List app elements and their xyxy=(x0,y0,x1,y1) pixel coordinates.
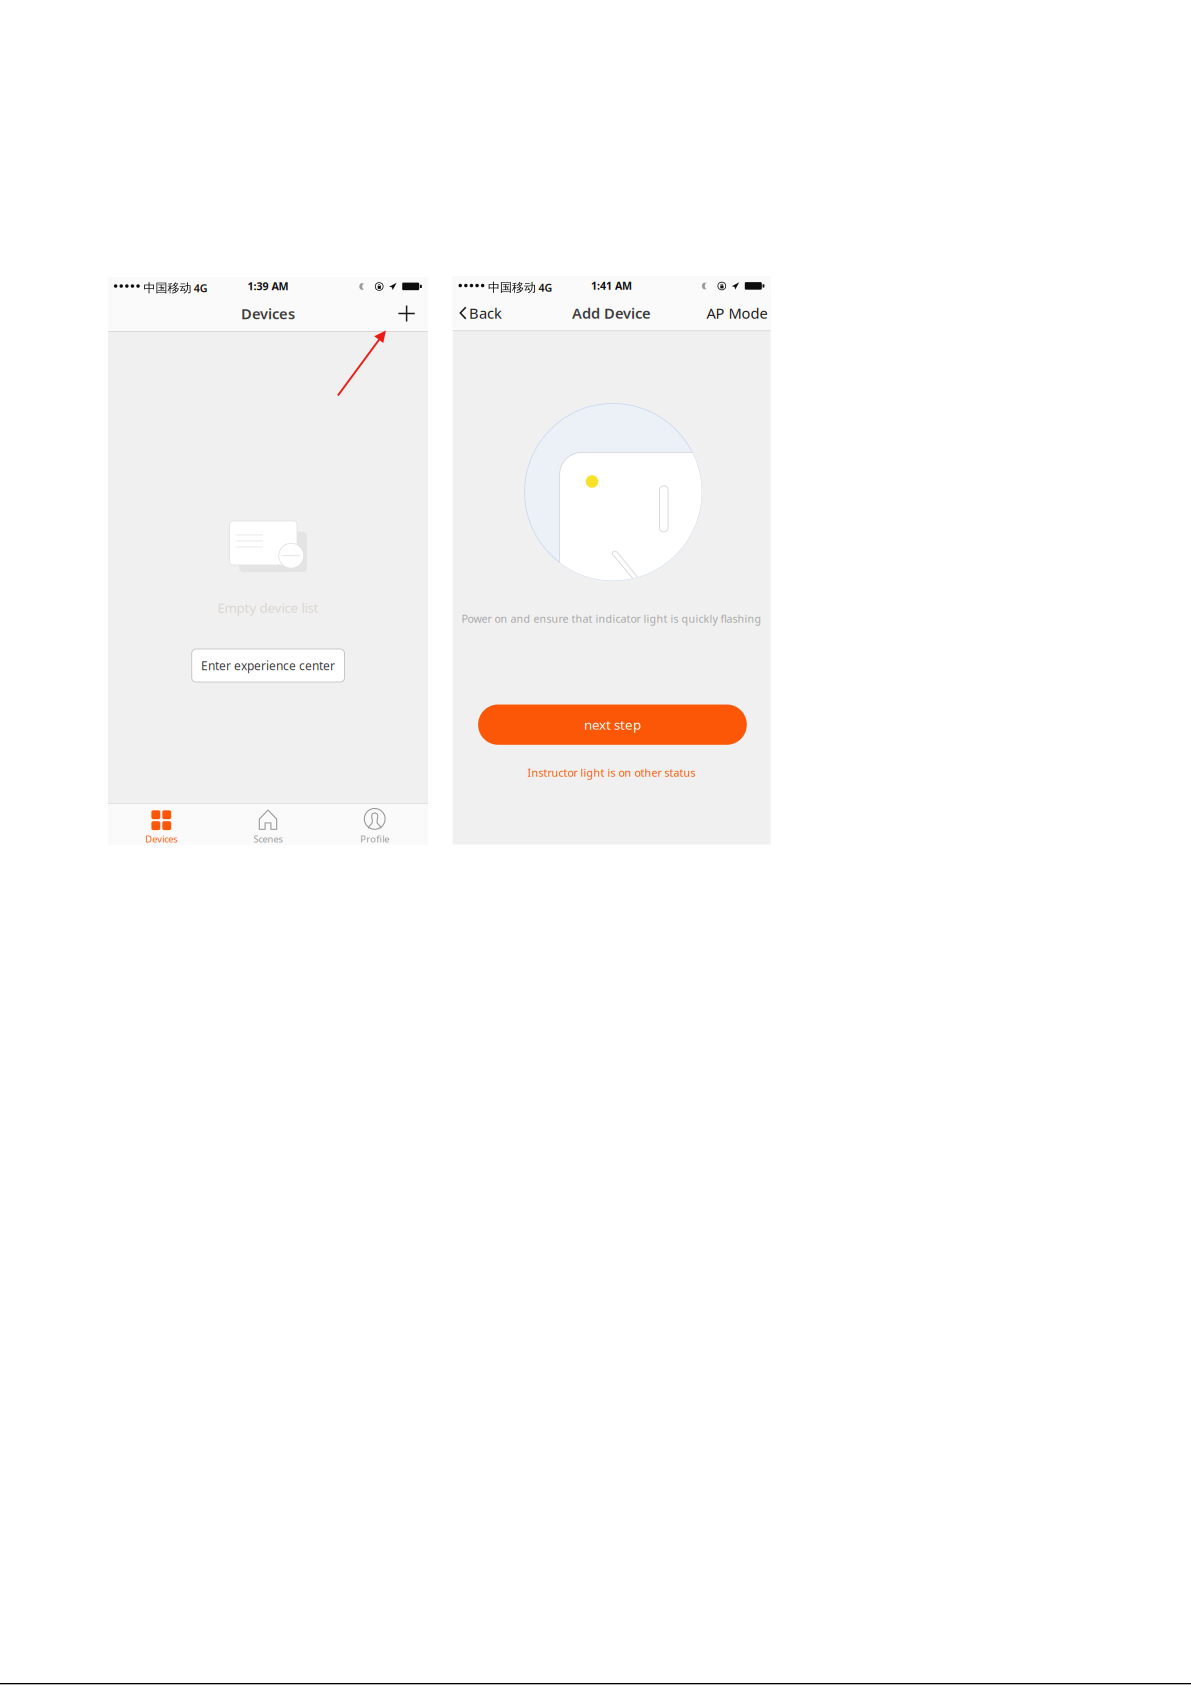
staticText: 1:39 AM xyxy=(247,279,288,293)
staticText: AP Mode xyxy=(707,303,768,323)
staticText: Instructor light is on other status xyxy=(528,765,696,780)
staticText: 中国移动 xyxy=(143,281,191,295)
button[interactable]: Add device xyxy=(387,300,427,327)
staticText: 4G xyxy=(538,280,552,295)
button[interactable]: Devices xyxy=(108,804,215,845)
staticText: Devices xyxy=(241,304,295,323)
staticText: Back xyxy=(469,303,502,323)
staticText: Add Device xyxy=(572,303,651,323)
staticText: next step xyxy=(584,716,641,733)
staticText: 4G xyxy=(194,281,208,295)
button[interactable]: Enter experience center xyxy=(192,649,344,682)
button[interactable]: Scenes xyxy=(215,804,321,845)
staticText: Empty device list xyxy=(217,599,318,616)
button[interactable]: Profile xyxy=(321,804,428,845)
button[interactable]: AP Mode xyxy=(704,299,771,326)
staticText: Enter experience center xyxy=(201,657,335,673)
staticText: 中国移动 xyxy=(488,280,536,295)
staticText: Power on and ensure that indicator light… xyxy=(462,611,762,626)
staticText: 1:41 AM xyxy=(591,278,632,293)
button[interactable]: Instructor light is on other status xyxy=(453,764,771,780)
button[interactable]: Back xyxy=(456,299,505,326)
staticText: Devices xyxy=(145,833,177,845)
button[interactable]: next step xyxy=(478,704,747,745)
staticText: Profile xyxy=(360,833,389,845)
staticText: Scenes xyxy=(253,833,282,845)
